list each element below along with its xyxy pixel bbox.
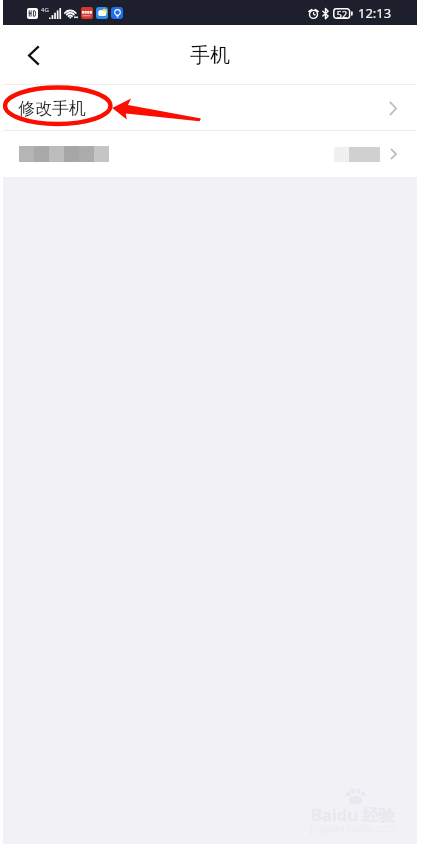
button[interactable]: 修改手机 xyxy=(3,85,417,131)
button[interactable] xyxy=(3,131,417,177)
staticText: 12:13 xyxy=(358,4,392,22)
staticText: 手机 xyxy=(190,43,230,68)
staticText: Baidu 经验 xyxy=(311,803,396,826)
staticText: 4G xyxy=(41,6,49,14)
button[interactable]: Back xyxy=(3,25,61,85)
staticText: 修改手机 xyxy=(18,98,86,119)
staticText: 52 xyxy=(333,8,351,19)
